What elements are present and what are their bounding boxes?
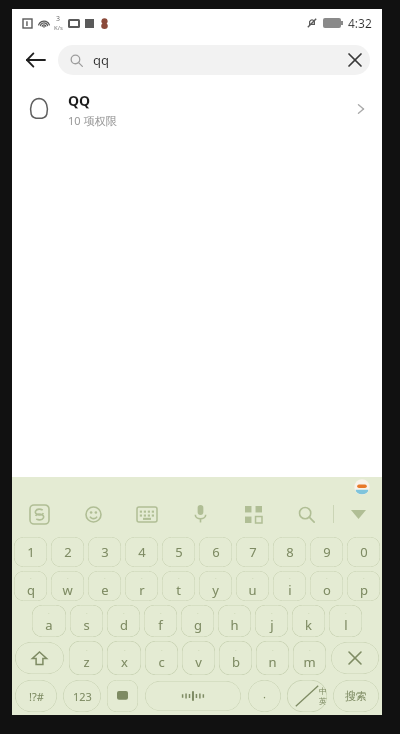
staticText: i: [288, 581, 292, 599]
button[interactable]: 9: [310, 537, 343, 567]
staticText: .: [160, 608, 162, 616]
staticText: m: [303, 653, 316, 671]
button[interactable]: 8: [273, 537, 306, 567]
button[interactable]: .: [292, 605, 325, 637]
button[interactable]: 5: [162, 537, 195, 567]
staticText: k: [305, 616, 312, 634]
button[interactable]: .: [145, 641, 178, 675]
button[interactable]: 6: [199, 537, 232, 567]
staticText: t: [176, 581, 181, 599]
staticText: .: [309, 645, 311, 653]
button[interactable]: .: [347, 571, 380, 601]
button[interactable]: .: [88, 571, 121, 601]
button[interactable]: .: [162, 571, 195, 601]
button[interactable]: Hide keyboard: [334, 497, 382, 531]
button[interactable]: 0: [347, 537, 380, 567]
staticText: d: [120, 616, 128, 634]
button[interactable]: Input method: [107, 680, 138, 712]
staticText: .: [161, 645, 163, 653]
staticText: 7: [249, 543, 257, 561]
staticText: x: [121, 653, 128, 671]
button[interactable]: Search: [280, 497, 333, 531]
button[interactable]: Voice: [174, 497, 227, 531]
button[interactable]: .: [107, 605, 140, 637]
button[interactable]: .: [273, 571, 306, 601]
button[interactable]: Shift: [15, 642, 64, 674]
button[interactable]: .: [144, 605, 177, 637]
button[interactable]: .: [236, 571, 269, 601]
button[interactable]: .: [181, 605, 214, 637]
staticText: e: [101, 581, 109, 599]
button[interactable]: 1: [14, 537, 47, 567]
button[interactable]: 2: [51, 537, 84, 567]
button[interactable]: .: [182, 641, 215, 675]
button[interactable]: .: [70, 605, 103, 637]
staticText: K/s: [54, 24, 63, 32]
staticText: .: [252, 573, 254, 581]
staticText: .: [308, 608, 310, 616]
button[interactable]: Back: [12, 37, 58, 83]
button[interactable]: 3: [88, 537, 121, 567]
button[interactable]: .: [293, 641, 326, 675]
button[interactable]: Sticker: [354, 479, 370, 495]
button[interactable]: .: [51, 571, 84, 601]
staticText: 3: [101, 543, 109, 561]
staticText: 0: [360, 543, 368, 561]
staticText: 搜索: [345, 689, 367, 703]
button[interactable]: 4: [125, 537, 158, 567]
button[interactable]: QQ: [12, 83, 382, 135]
button[interactable]: Clear: [340, 45, 370, 75]
button[interactable]: .: [255, 605, 288, 637]
staticText: .: [178, 573, 180, 581]
staticText: a: [45, 616, 53, 634]
button[interactable]: .: [199, 571, 232, 601]
staticText: r: [139, 581, 145, 599]
button[interactable]: 123: [63, 680, 101, 712]
button[interactable]: .: [125, 571, 158, 601]
staticText: n: [268, 653, 277, 671]
staticText: .: [86, 608, 88, 616]
button[interactable]: .: [69, 641, 103, 675]
button[interactable]: Backspace: [331, 642, 379, 674]
staticText: b: [232, 653, 240, 671]
staticText: .: [271, 608, 273, 616]
button[interactable]: .: [14, 571, 47, 601]
staticText: .: [289, 573, 291, 581]
button[interactable]: Emoji: [66, 497, 120, 531]
button[interactable]: 7: [236, 537, 269, 567]
staticText: 6: [212, 543, 220, 561]
staticText: 英: [319, 696, 327, 706]
button[interactable]: qq: [58, 45, 370, 75]
staticText: .: [363, 573, 365, 581]
button[interactable]: .: [256, 641, 289, 675]
button[interactable]: .: [329, 605, 362, 637]
staticText: 2: [64, 543, 72, 561]
staticText: qq: [93, 51, 109, 69]
button[interactable]: .: [310, 571, 343, 601]
staticText: h: [230, 616, 239, 634]
button[interactable]: 搜索: [333, 680, 379, 712]
button[interactable]: Sogou: [12, 497, 66, 531]
staticText: c: [158, 653, 165, 671]
button[interactable]: .: [32, 605, 66, 637]
button[interactable]: .: [107, 641, 141, 675]
staticText: o: [323, 581, 331, 599]
button[interactable]: Apps: [227, 497, 280, 531]
button[interactable]: Keyboard: [120, 497, 174, 531]
staticText: j: [270, 616, 274, 634]
staticText: q: [27, 581, 35, 599]
staticText: l: [344, 616, 348, 634]
button[interactable]: Space: [145, 681, 241, 711]
staticText: f: [158, 616, 163, 634]
button[interactable]: .: [219, 641, 252, 675]
button[interactable]: !?#: [15, 680, 57, 712]
staticText: .: [48, 608, 50, 616]
staticText: p: [360, 581, 368, 599]
staticText: 4:32: [348, 15, 372, 31]
button[interactable]: Chinese English toggle: [287, 680, 327, 712]
staticText: QQ: [68, 91, 91, 110]
button[interactable]: ·: [248, 680, 281, 712]
staticText: .: [104, 573, 106, 581]
button[interactable]: .: [218, 605, 251, 637]
staticText: y: [212, 581, 219, 599]
